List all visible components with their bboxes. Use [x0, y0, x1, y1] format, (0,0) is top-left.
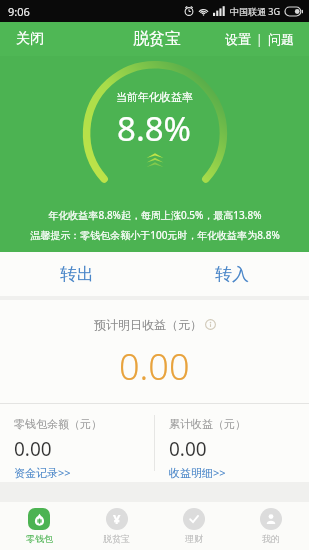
staticText: 资金记录>>	[14, 465, 71, 480]
staticText: 预计明日收益（元）	[94, 317, 202, 332]
other: Info	[205, 319, 216, 330]
button[interactable]: 关闭	[0, 24, 60, 54]
staticText: 0.00	[169, 436, 207, 462]
button[interactable]: 理财	[155, 502, 232, 550]
staticText: 问题	[268, 31, 294, 47]
staticText: 0.00	[119, 342, 190, 391]
button[interactable]: 我的	[232, 502, 309, 550]
staticText: 关闭	[16, 30, 44, 48]
staticText: 零钱包余额（元）	[14, 417, 102, 431]
staticText: ¥	[113, 510, 121, 528]
button[interactable]: 收益明细>>	[169, 465, 226, 480]
staticText: |	[256, 31, 263, 47]
staticText: 理财	[185, 533, 203, 544]
staticText: 中国联通 3G	[230, 5, 281, 17]
staticText: 当前年化收益率	[116, 90, 193, 104]
staticText: 零钱包	[26, 533, 53, 544]
button[interactable]: ¥	[78, 502, 155, 550]
staticText: 9:06	[8, 4, 30, 19]
staticText: 温馨提示：零钱包余额小于100元时，年化收益率为8.8%	[30, 228, 280, 242]
button[interactable]: 问题	[263, 25, 299, 53]
staticText: 脱贫宝	[133, 29, 181, 49]
staticText: 设置	[225, 31, 251, 47]
staticText: 年化收益率8.8%起，每周上涨0.5%，最高13.8%	[48, 208, 262, 222]
button[interactable]: 设置	[220, 25, 256, 53]
button[interactable]: 零钱包	[0, 502, 78, 550]
staticText: 0.00	[14, 436, 52, 462]
staticText: 我的	[262, 533, 280, 544]
staticText: 累计收益（元）	[169, 417, 246, 431]
button[interactable]: 转出	[0, 252, 154, 296]
staticText: 转出	[60, 264, 94, 285]
button[interactable]: 资金记录>>	[14, 465, 71, 480]
staticText: 8.8%	[117, 106, 192, 151]
staticText: 收益明细>>	[169, 465, 226, 480]
button[interactable]: 预计明日收益（元）	[90, 313, 220, 336]
staticText: 转入	[215, 264, 249, 285]
button[interactable]: 转入	[154, 252, 309, 296]
staticText: 脱贫宝	[103, 533, 130, 544]
